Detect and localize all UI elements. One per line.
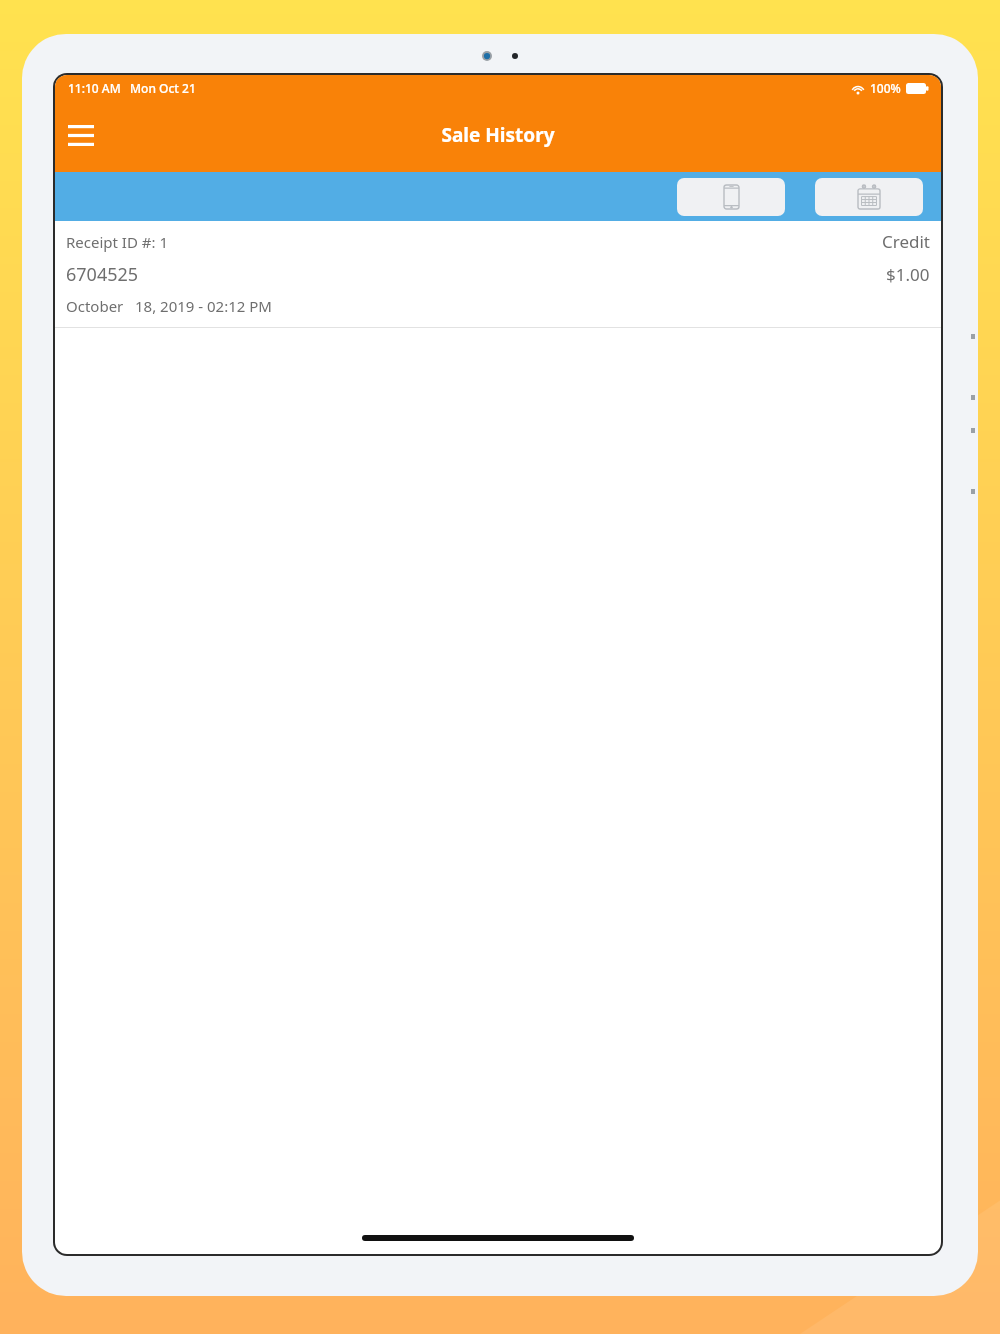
staticText: 11:10 AM Mon Oct 21 [68, 80, 196, 96]
staticText: 100% [870, 80, 901, 96]
staticText: October 18, 2019 - 02:12 PM [66, 296, 272, 316]
button[interactable]: Filter by date [815, 178, 923, 216]
staticText: Credit [882, 230, 930, 253]
button[interactable]: Filter by device [677, 178, 785, 216]
button[interactable]: Receipt ID #: 1 [55, 221, 941, 327]
button[interactable]: Open navigation menu [55, 109, 107, 161]
staticText: 6704525 [66, 262, 139, 287]
staticText: Sale History [441, 122, 555, 148]
staticText: $1.00 [886, 263, 930, 286]
staticText: Receipt ID #: 1 [66, 232, 168, 252]
